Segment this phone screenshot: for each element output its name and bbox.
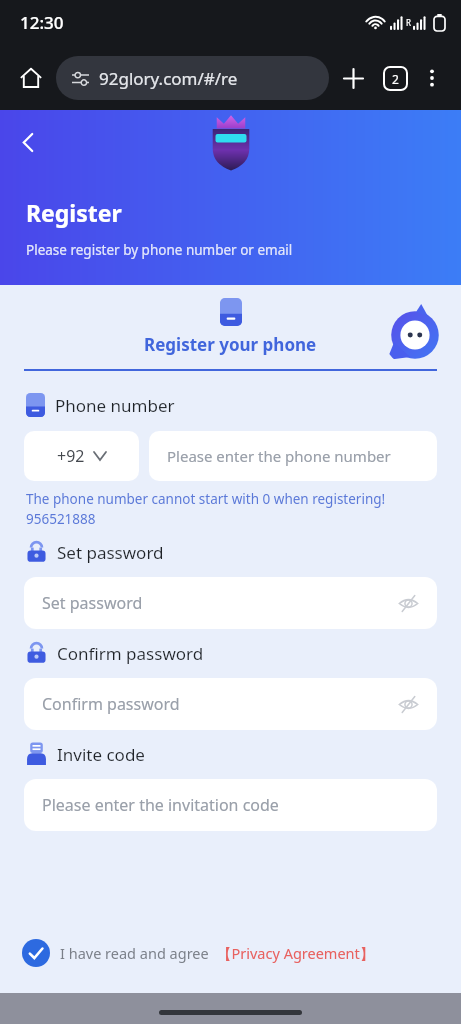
- button[interactable]: Please enter the phone number: [149, 431, 437, 481]
- staticText: 2: [392, 71, 399, 87]
- staticText: R: [406, 17, 411, 28]
- staticText: +92: [57, 445, 85, 467]
- button[interactable]: More options: [415, 61, 449, 95]
- staticText: Please enter the phone number: [167, 446, 391, 466]
- button[interactable]: Customer service chat: [383, 303, 447, 367]
- button[interactable]: New tab: [333, 58, 373, 98]
- staticText: I have read and agree: [60, 943, 209, 963]
- button[interactable]: Back: [8, 122, 48, 162]
- button[interactable]: Home: [12, 59, 50, 97]
- staticText: Confirm password: [42, 693, 395, 715]
- staticText: Confirm password: [57, 642, 204, 665]
- button[interactable]: Please enter the invitation code: [24, 779, 437, 831]
- staticText: Set password: [42, 592, 395, 614]
- button[interactable]: 【Privacy Agreement】: [217, 943, 375, 963]
- staticText: 12:30: [20, 11, 64, 34]
- staticText: Please enter the invitation code: [42, 794, 279, 816]
- button[interactable]: Confirm password: [24, 678, 437, 730]
- button[interactable]: 92glory.com/#/re: [56, 56, 329, 100]
- staticText: 92glory.com/#/re: [99, 67, 238, 90]
- staticText: Register: [26, 197, 122, 228]
- button[interactable]: Set password: [24, 577, 437, 629]
- button[interactable]: Show password: [395, 691, 421, 717]
- button[interactable]: +92: [24, 431, 139, 481]
- staticText: Invite code: [57, 743, 145, 766]
- staticText: The phone number cannot start with 0 whe…: [26, 490, 435, 528]
- staticText: Phone number: [55, 394, 175, 417]
- button[interactable]: Register your phone: [108, 296, 353, 358]
- button[interactable]: I have read and agree: [0, 935, 461, 971]
- staticText: Set password: [57, 541, 164, 564]
- staticText: Please register by phone number or email: [26, 241, 293, 259]
- button[interactable]: Open tabs, 2: [375, 58, 415, 98]
- button[interactable]: Show password: [395, 590, 421, 616]
- staticText: Register your phone: [144, 333, 317, 356]
